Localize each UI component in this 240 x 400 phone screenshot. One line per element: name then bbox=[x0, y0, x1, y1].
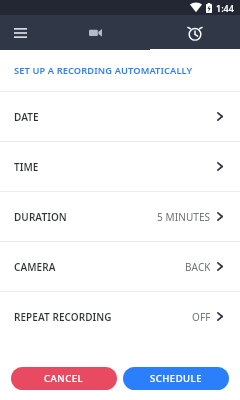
staticText: SET UP A RECORDING AUTOMATICALLY bbox=[14, 64, 193, 77]
staticText: SCHEDULE bbox=[150, 372, 202, 385]
button[interactable]: Video recording tab bbox=[40, 15, 150, 50]
staticText: REPEAT RECORDING bbox=[14, 310, 112, 324]
staticText: DURATION bbox=[14, 210, 67, 224]
staticText: CANCEL bbox=[44, 372, 84, 385]
staticText: 1:44 bbox=[216, 2, 234, 14]
staticText: BACK bbox=[185, 260, 211, 274]
button[interactable]: CAMERA bbox=[0, 242, 240, 291]
staticText: TIME bbox=[14, 160, 39, 174]
staticText: OFF bbox=[192, 310, 211, 324]
button[interactable]: DURATION bbox=[0, 192, 240, 241]
staticText: CAMERA bbox=[14, 260, 56, 274]
button[interactable]: SCHEDULE bbox=[123, 367, 229, 390]
button[interactable]: Open navigation menu bbox=[0, 15, 40, 50]
staticText: 5 MINUTES bbox=[157, 210, 211, 224]
button[interactable]: CANCEL bbox=[11, 367, 117, 390]
button[interactable]: Scheduled recording tab bbox=[150, 15, 240, 50]
staticText: DATE bbox=[14, 110, 39, 124]
button[interactable]: REPEAT RECORDING bbox=[0, 292, 240, 341]
button[interactable]: TIME bbox=[0, 142, 240, 191]
button[interactable]: DATE bbox=[0, 92, 240, 141]
